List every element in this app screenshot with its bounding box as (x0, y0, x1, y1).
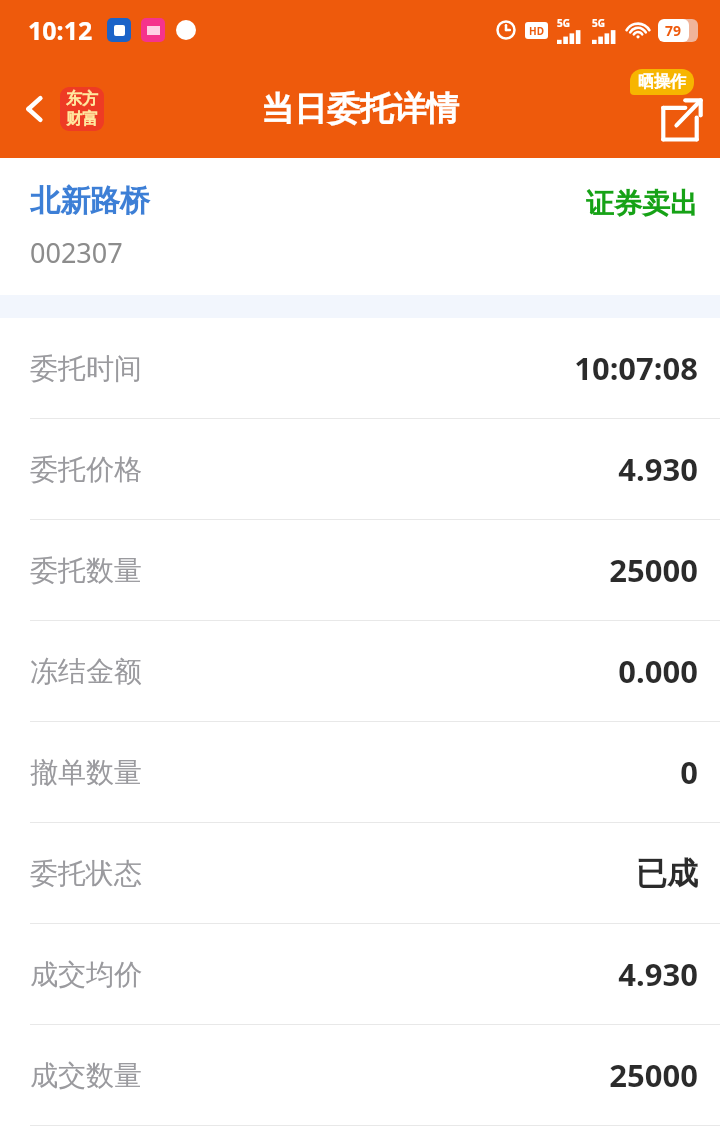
staticText: 0.000 (142, 650, 698, 692)
other: Back (20, 94, 50, 124)
staticText: 25000 (142, 549, 698, 591)
staticText: 0 (142, 751, 698, 793)
staticText: 成交数量 (30, 1058, 142, 1093)
button[interactable]: 成交均价 (0, 924, 720, 1024)
button[interactable]: 委托价格 (0, 419, 720, 519)
staticText: 4.930 (142, 448, 698, 490)
button[interactable]: 委托时间 (0, 318, 720, 418)
staticText: 委托时间 (30, 351, 142, 386)
staticText: 北新路桥 (30, 182, 150, 220)
staticText: 4.930 (142, 953, 698, 995)
staticText: 委托数量 (30, 553, 142, 588)
button[interactable]: 冻结金额 (0, 621, 720, 721)
staticText: 委托状态 (30, 856, 142, 891)
button[interactable]: 成交数量 (0, 1025, 720, 1125)
staticText: 撤单数量 (30, 755, 142, 790)
staticText: 东方 (66, 89, 98, 109)
staticText: 5G (557, 16, 570, 30)
button[interactable]: 撤单数量 (0, 722, 720, 822)
staticText: 10:07:08 (142, 347, 698, 389)
button[interactable]: Share (630, 69, 706, 149)
staticText: 25000 (142, 1054, 698, 1096)
button[interactable]: Back (14, 81, 110, 137)
staticText: HD (529, 24, 544, 38)
staticText: 10:12 (28, 13, 93, 47)
staticText: 79 (665, 21, 682, 40)
staticText: 成交均价 (30, 957, 142, 992)
staticText: 002307 (30, 234, 123, 271)
button[interactable]: 委托状态 (0, 823, 720, 923)
staticText: 当日委托详情 (261, 88, 459, 130)
staticText: 晒操作 (638, 72, 686, 92)
staticText: 委托价格 (30, 452, 142, 487)
staticText: 冻结金额 (30, 654, 142, 689)
staticText: 财富 (66, 109, 98, 129)
staticText: 5G (592, 16, 605, 30)
staticText: 已成 (142, 854, 698, 893)
staticText: 证券卖出 (586, 186, 698, 221)
button[interactable]: 委托数量 (0, 520, 720, 620)
